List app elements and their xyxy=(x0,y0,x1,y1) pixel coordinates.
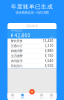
staticText: 快来看看你这一年的消费 xyxy=(15,10,48,15)
staticText: 首页 xyxy=(10,97,14,99)
staticText: 生活缴费 xyxy=(10,54,22,58)
staticText: 6,210 xyxy=(44,44,53,48)
staticText: 12,430 xyxy=(42,39,53,43)
button[interactable]: 首页 xyxy=(7,93,17,100)
staticText: 休闲娱乐 xyxy=(10,59,22,63)
button[interactable]: 记一笔 xyxy=(29,89,35,100)
button[interactable]: 账单 xyxy=(17,93,27,100)
staticText: 本年度总支出 xyxy=(10,29,22,32)
staticText: 4,150 xyxy=(44,54,53,58)
staticText: 我的 xyxy=(49,97,53,99)
staticText: 5,640 xyxy=(44,59,53,63)
button[interactable]: 休闲娱乐 xyxy=(7,58,56,63)
button[interactable]: 生活缴费 xyxy=(7,53,56,58)
staticText: 交通出行 xyxy=(10,44,22,48)
staticText: 9,880 xyxy=(44,49,53,53)
button[interactable]: 交通出行 xyxy=(7,43,56,48)
staticText: ¥ 42,860 xyxy=(10,32,30,39)
staticText: 购物消费 xyxy=(10,49,22,53)
staticText: 我的账单 xyxy=(26,24,38,28)
staticText: 2023 xyxy=(49,35,53,39)
button[interactable]: 其他支出 xyxy=(7,63,56,68)
button[interactable]: 发现 xyxy=(36,93,46,100)
button[interactable]: 购物消费 xyxy=(7,48,56,53)
staticText: 发现 xyxy=(39,97,43,99)
button[interactable]: 餐饮美食 xyxy=(7,38,56,43)
staticText: 账单 xyxy=(20,97,24,99)
staticText: 4,550 xyxy=(44,64,53,68)
staticText: 其他支出 xyxy=(10,64,22,68)
button[interactable]: 我的 xyxy=(46,93,56,100)
staticText: 餐饮美食 xyxy=(10,39,22,43)
staticText: 年度账单已生成 xyxy=(11,3,53,10)
